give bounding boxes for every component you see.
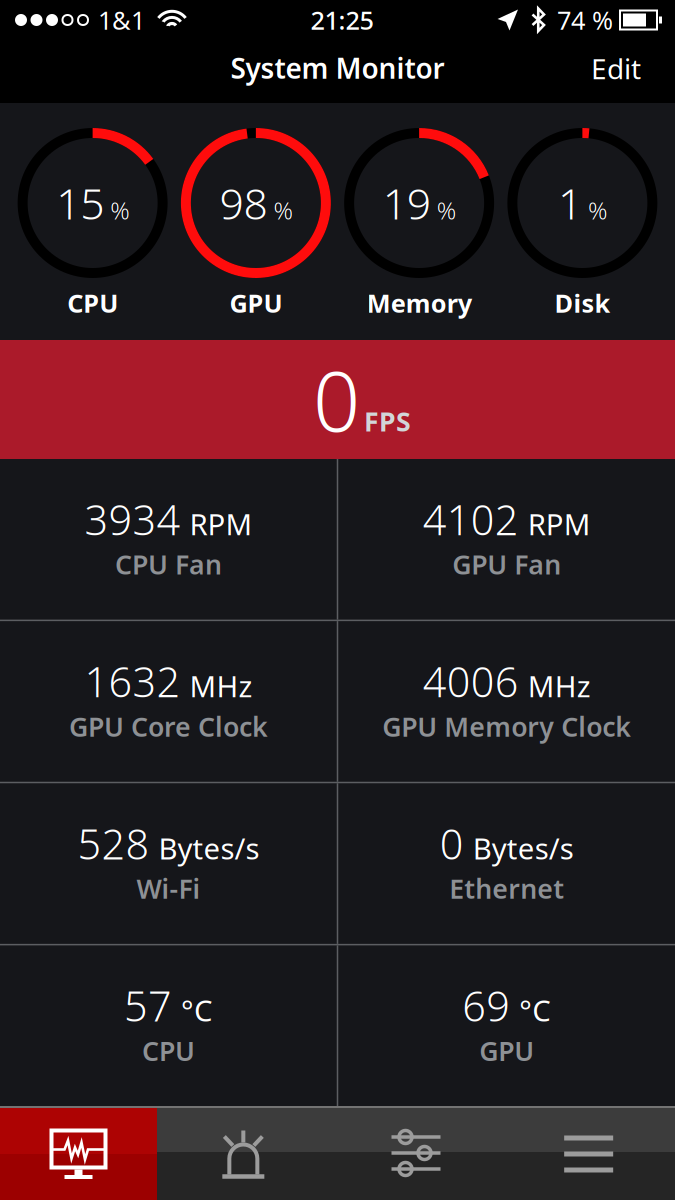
staticText: Bytes/s xyxy=(473,828,574,867)
staticText: 1&1 xyxy=(98,3,145,37)
staticText: % xyxy=(437,194,456,226)
staticText: CPU xyxy=(67,286,118,320)
staticText: 15 xyxy=(56,175,104,231)
staticText: RPM xyxy=(528,504,591,543)
staticText: FPS xyxy=(364,403,411,439)
staticText: 4102 xyxy=(423,492,519,547)
staticText: °C xyxy=(519,991,551,1030)
staticText: Bytes/s xyxy=(158,828,259,867)
staticText: 0 xyxy=(440,816,464,871)
button[interactable]: Monitor xyxy=(0,1108,157,1200)
staticText: 4006 xyxy=(423,654,519,709)
staticText: % xyxy=(110,194,129,226)
staticText: Ethernet xyxy=(449,871,564,906)
staticText: GPU xyxy=(479,1033,534,1068)
staticText: Wi-Fi xyxy=(136,871,200,906)
staticText: 69 xyxy=(462,978,510,1033)
button[interactable]: Settings xyxy=(330,1108,502,1200)
staticText: 98 xyxy=(219,175,267,231)
staticText: 19 xyxy=(383,175,431,231)
staticText: GPU Fan xyxy=(452,546,561,582)
staticText: GPU xyxy=(229,286,282,320)
staticText: 74 % xyxy=(557,3,613,37)
staticText: °C xyxy=(181,991,213,1030)
staticText: 528 xyxy=(77,816,149,871)
staticText: RPM xyxy=(189,504,252,543)
staticText: CPU xyxy=(142,1033,195,1068)
staticText: % xyxy=(588,194,607,226)
staticText: 1 xyxy=(558,175,582,231)
staticText: 57 xyxy=(124,978,172,1033)
staticText: MHz xyxy=(528,666,591,705)
staticText: GPU Core Clock xyxy=(69,709,268,744)
staticText: Disk xyxy=(554,286,610,320)
button[interactable]: More xyxy=(502,1108,675,1200)
staticText: 3934 xyxy=(84,492,180,547)
button[interactable]: Edit xyxy=(573,42,659,101)
staticText: MHz xyxy=(189,666,252,705)
staticText: 21:25 xyxy=(310,3,373,37)
staticText: Memory xyxy=(367,286,472,320)
staticText: GPU Memory Clock xyxy=(382,709,631,744)
staticText: 1632 xyxy=(84,654,180,709)
button[interactable]: Alerts xyxy=(157,1108,330,1200)
staticText: % xyxy=(273,194,292,226)
staticText: CPU Fan xyxy=(115,546,222,582)
staticText: System Monitor xyxy=(230,49,444,87)
staticText: 0 xyxy=(313,345,360,454)
staticText: Edit xyxy=(591,50,641,87)
